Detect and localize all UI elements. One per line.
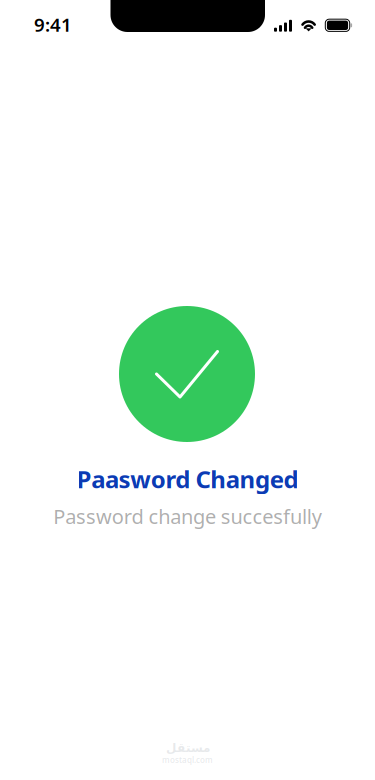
staticText: mostaql.com (162, 755, 213, 765)
staticText: 9:41 (34, 12, 72, 37)
staticText: Paasword Changed (77, 463, 298, 495)
staticText: Password change succesfully (53, 503, 322, 530)
staticText: مستقل (165, 741, 209, 755)
